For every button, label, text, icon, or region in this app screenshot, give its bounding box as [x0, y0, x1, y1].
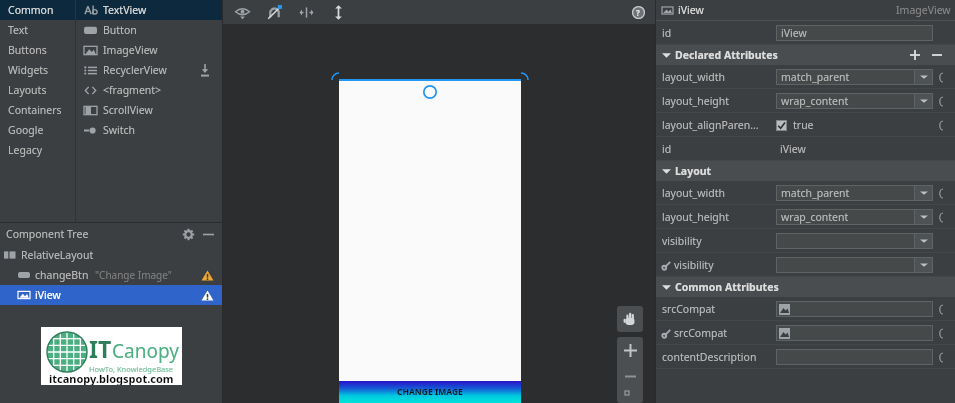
button[interactable]: Layouts	[0, 80, 75, 100]
staticText: true	[793, 118, 814, 132]
button[interactable]: Legacy	[0, 140, 75, 160]
staticText: iView	[35, 288, 61, 302]
button[interactable]: contentDescription	[656, 345, 955, 369]
staticText: changeBtn	[35, 268, 89, 282]
button[interactable]: Help	[629, 3, 647, 21]
staticText: Common	[8, 3, 54, 17]
button[interactable]: Buttons	[0, 40, 75, 60]
staticText: Common Attributes	[675, 280, 779, 294]
staticText: IT	[89, 333, 112, 364]
staticText: itcanopy.blogspot.com	[49, 371, 174, 385]
button[interactable]: Pan	[617, 306, 643, 332]
button[interactable]: srcCompat	[656, 321, 955, 345]
staticText: "Change Image"	[95, 268, 172, 282]
button[interactable]: Google	[0, 120, 75, 140]
staticText: wrap_content	[781, 94, 849, 108]
button[interactable]: Zoom to fit	[623, 389, 637, 403]
staticText: layout_height	[662, 94, 730, 108]
staticText: layout_alignParen…	[662, 118, 759, 132]
staticText: visibility	[662, 234, 702, 248]
button[interactable]: ScrollView	[76, 100, 222, 120]
staticText: Button	[103, 23, 137, 37]
staticText: RecyclerView	[103, 63, 167, 77]
staticText: iView	[781, 26, 807, 40]
button[interactable]: layout_height	[656, 89, 955, 113]
staticText: Declared Attributes	[675, 48, 778, 62]
staticText: Component Tree	[6, 227, 89, 241]
button[interactable]: id	[656, 137, 955, 161]
button[interactable]: visibility	[656, 229, 955, 253]
button[interactable]: <fragment>	[76, 80, 222, 100]
staticText: Containers	[8, 103, 62, 117]
button[interactable]: Show design surface	[233, 3, 251, 21]
staticText: ImageView	[103, 43, 158, 57]
button[interactable]: Containers	[0, 100, 75, 120]
button[interactable]: srcCompat	[656, 297, 955, 321]
button[interactable]: Remove attribute	[929, 47, 945, 63]
staticText: layout_height	[662, 210, 730, 224]
button[interactable]: CHANGE IMAGE	[339, 381, 521, 403]
staticText: <fragment>	[103, 83, 162, 97]
staticText: Legacy	[8, 143, 43, 157]
staticText: ?	[636, 7, 640, 18]
button[interactable]: Align horizontally	[297, 3, 315, 21]
button[interactable]: Zoom in	[617, 337, 643, 363]
staticText: ImageView	[896, 3, 951, 17]
button[interactable]: layout_alignParen…	[656, 113, 955, 137]
button[interactable]: TextView	[76, 0, 222, 20]
button[interactable]: RelativeLayout	[0, 245, 222, 265]
staticText: layout_width	[662, 70, 725, 84]
button[interactable]: Button	[76, 20, 222, 40]
staticText: RelativeLayout	[21, 248, 94, 262]
staticText: srcCompat	[662, 302, 716, 316]
button[interactable]: Declared Attributes	[656, 45, 955, 65]
button[interactable]: ImageView	[76, 40, 222, 60]
staticText: visibility	[674, 258, 714, 272]
button[interactable]: Common Attributes	[656, 277, 955, 297]
button[interactable]: Settings	[180, 226, 196, 242]
staticText: id	[662, 142, 672, 156]
staticText: layout_width	[662, 186, 725, 200]
button[interactable]: layout_width	[656, 65, 955, 89]
staticText: match_parent	[781, 186, 850, 200]
button[interactable]: Minimize	[200, 226, 216, 242]
staticText: TextView	[103, 3, 147, 17]
staticText: iView	[678, 3, 704, 17]
staticText: Text	[8, 23, 29, 37]
button[interactable]: Add attribute	[907, 47, 923, 63]
button[interactable]: Widgets	[0, 60, 75, 80]
button[interactable]: Align vertically	[329, 3, 347, 21]
staticText: contentDescription	[662, 350, 757, 364]
button[interactable]: Switch	[76, 120, 222, 140]
staticText: id	[662, 26, 672, 40]
staticText: Google	[8, 123, 44, 137]
staticText: Buttons	[8, 43, 47, 57]
staticText: Switch	[103, 123, 136, 137]
button[interactable]: visibility	[656, 253, 955, 277]
staticText: Layout	[675, 164, 712, 178]
staticText: Layouts	[8, 83, 47, 97]
button[interactable]: Toggle magnet	[265, 3, 283, 21]
staticText: CHANGE IMAGE	[397, 386, 463, 398]
button[interactable]: Common	[0, 0, 75, 20]
button[interactable]: iView	[0, 285, 222, 305]
button[interactable]: RecyclerView	[76, 60, 222, 80]
button[interactable]: layout_height	[656, 205, 955, 229]
button[interactable]: changeBtn	[0, 265, 222, 285]
staticText: match_parent	[781, 70, 850, 84]
staticText: Canopy	[112, 338, 179, 364]
button[interactable]: Zoom out	[617, 363, 643, 389]
staticText: Widgets	[8, 63, 49, 77]
staticText: iView	[780, 142, 806, 156]
button[interactable]: layout_width	[656, 181, 955, 205]
button[interactable]: Layout	[656, 161, 955, 181]
staticText: ScrollView	[103, 103, 153, 117]
staticText: srcCompat	[674, 326, 728, 340]
staticText: wrap_content	[781, 210, 849, 224]
staticText: HowTo, KnowledgeBase	[89, 364, 174, 374]
button[interactable]: id	[656, 21, 955, 45]
button[interactable]: Text	[0, 20, 75, 40]
